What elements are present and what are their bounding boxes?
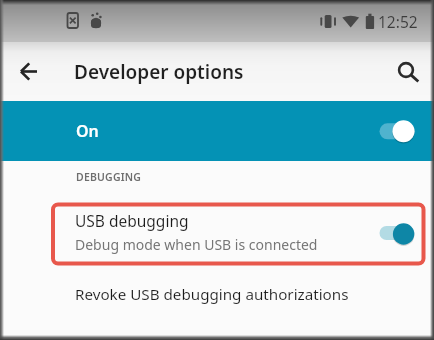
button[interactable]: On xyxy=(0,101,434,161)
staticText: DEBUGGING xyxy=(76,170,142,184)
button[interactable] xyxy=(390,55,424,89)
staticText: Developer options xyxy=(74,59,244,85)
button[interactable]: USB debugging xyxy=(0,200,434,266)
button[interactable] xyxy=(10,55,44,89)
staticText: On xyxy=(76,120,99,142)
staticText: Debug mode when USB is connected xyxy=(75,235,318,254)
staticText: USB debugging xyxy=(75,210,189,231)
staticText: Revoke USB debugging authorizations xyxy=(75,284,349,305)
button[interactable]: Revoke USB debugging authorizations xyxy=(0,272,434,324)
staticText: 12:52 xyxy=(378,11,418,32)
